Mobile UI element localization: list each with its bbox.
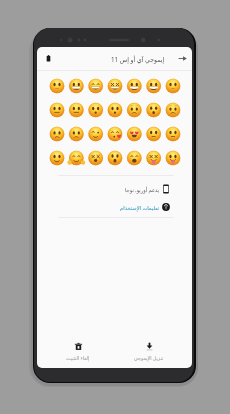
button[interactable]: إلغاء التثبيت [43,335,113,368]
button[interactable]: تعليمات الإستخدام [37,198,192,216]
staticText: إيموجي آي أو إس 11 [111,55,165,63]
button[interactable]: Back [176,52,189,65]
staticText: إلغاء التثبيت [66,355,90,362]
button[interactable]: Battery status [42,52,55,65]
button[interactable]: تنزيل الإيموجي [114,335,184,368]
staticText: تعليمات الإستخدام [120,204,160,211]
button[interactable]: يدعم أوريو, نوجا [37,180,192,198]
staticText: يدعم أوريو, نوجا [125,186,160,193]
staticText: تنزيل الإيموجي [134,355,164,362]
